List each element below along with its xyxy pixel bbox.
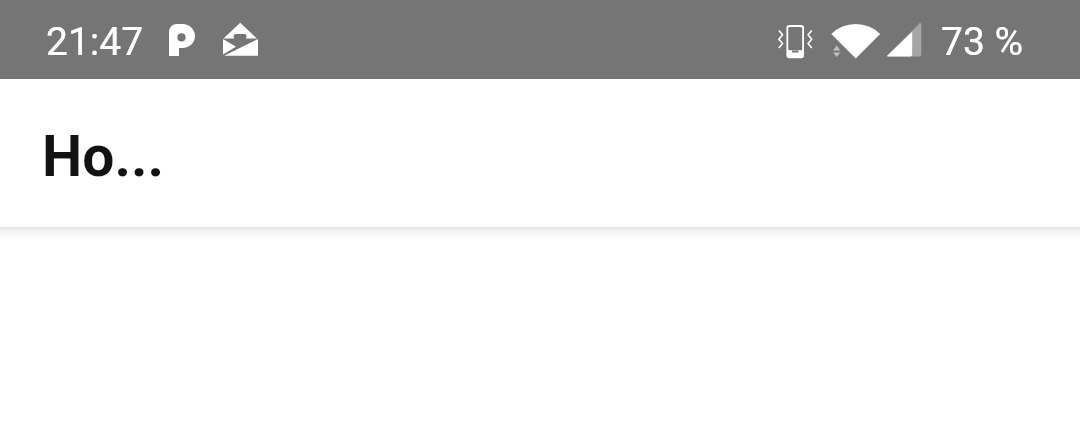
other: Pocket Casts notification <box>169 24 195 56</box>
staticText: 73 % <box>941 19 1024 65</box>
staticText: 21:47 <box>46 19 144 65</box>
other: Mobile signal strength <box>885 22 923 58</box>
other: Unread mail notification <box>222 22 259 57</box>
staticText: Ho... <box>42 123 165 190</box>
other: Ringer set to vibrate <box>776 22 814 58</box>
button[interactable]: Ho... <box>0 79 1080 227</box>
other: Wi-Fi connected <box>832 23 879 59</box>
